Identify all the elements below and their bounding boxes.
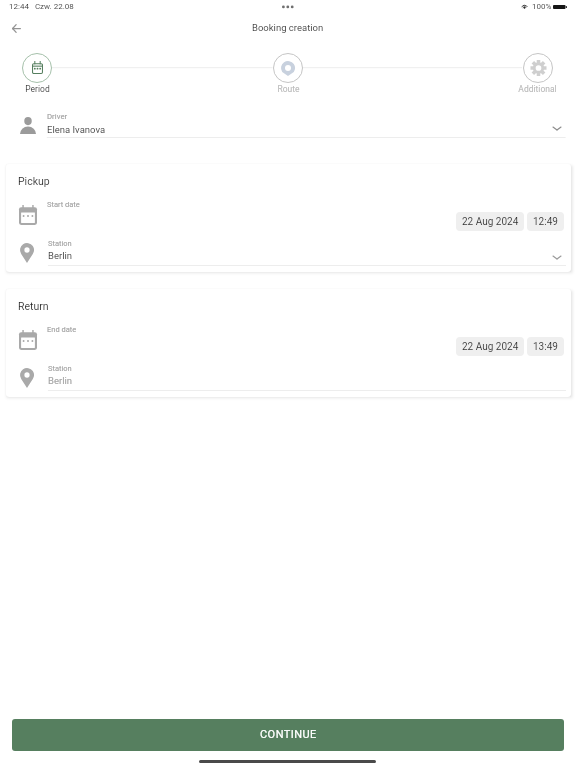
- staticText: Station: [48, 364, 72, 373]
- staticText: Elena Ivanova: [47, 124, 106, 135]
- staticText: Station: [48, 239, 72, 248]
- button[interactable]: Station: [6, 363, 571, 397]
- staticText: 12:49: [533, 216, 558, 228]
- staticText: Additional: [518, 84, 557, 94]
- staticText: Route: [277, 84, 300, 94]
- staticText: Driver: [47, 112, 68, 121]
- staticText: Pickup: [18, 175, 50, 187]
- staticText: 22 Aug 2024: [462, 341, 519, 353]
- staticText: Berlin: [48, 250, 73, 261]
- staticText: Period: [25, 84, 50, 94]
- button[interactable]: Period: [7, 53, 67, 94]
- staticText: End date: [47, 325, 77, 334]
- button[interactable]: Driver: [0, 108, 576, 142]
- staticText: Start date: [47, 200, 80, 209]
- staticText: 22 Aug 2024: [462, 216, 519, 228]
- button[interactable]: CONTINUE: [12, 719, 564, 751]
- button[interactable]: 12:49: [527, 212, 564, 231]
- staticText: CONTINUE: [260, 728, 317, 741]
- button[interactable]: 22 Aug 2024: [456, 337, 524, 356]
- button[interactable]: End date: [6, 319, 571, 361]
- button[interactable]: Start date: [6, 194, 571, 236]
- staticText: Berlin: [48, 375, 73, 386]
- button[interactable]: Route: [258, 53, 318, 94]
- staticText: Return: [18, 300, 49, 312]
- staticText: Booking creation: [252, 22, 324, 33]
- staticText: 13:49: [533, 341, 558, 353]
- button[interactable]: Station: [6, 238, 571, 272]
- button[interactable]: 22 Aug 2024: [456, 212, 524, 231]
- staticText: 12:44 Czw. 22.08: [9, 2, 74, 11]
- button[interactable]: 13:49: [527, 337, 564, 356]
- staticText: 100%: [532, 2, 552, 11]
- button[interactable]: Back: [2, 14, 30, 42]
- button[interactable]: Additional: [507, 53, 567, 94]
